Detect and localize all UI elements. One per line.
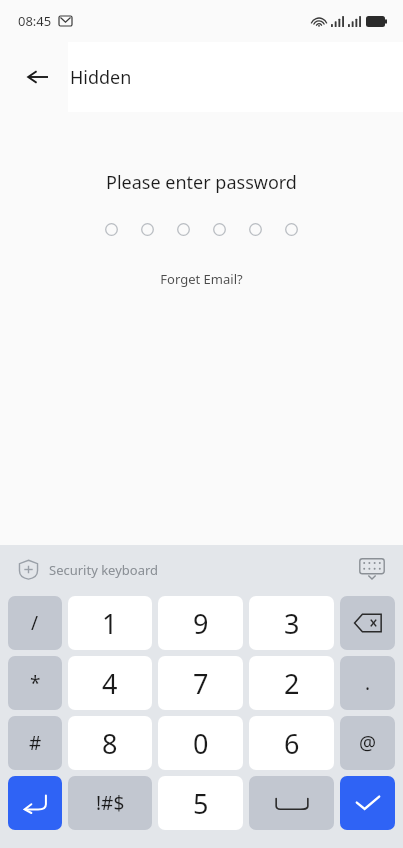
button[interactable]: @ bbox=[340, 716, 395, 770]
button[interactable]: Enter bbox=[8, 776, 62, 830]
button[interactable]: . bbox=[340, 656, 395, 710]
button[interactable]: 2 bbox=[249, 656, 334, 710]
staticText: Forget Email? bbox=[160, 270, 243, 288]
button[interactable]: 6 bbox=[249, 716, 334, 770]
button[interactable]: Hide keyboard bbox=[355, 552, 389, 586]
staticText: . bbox=[365, 670, 371, 696]
button[interactable]: 5 bbox=[158, 776, 243, 830]
staticText: / bbox=[31, 610, 39, 636]
staticText: 2 bbox=[284, 665, 300, 702]
button[interactable]: Backspace bbox=[340, 596, 395, 650]
button[interactable]: !#$ bbox=[68, 776, 152, 830]
button[interactable]: 9 bbox=[158, 596, 243, 650]
staticText: Hidden bbox=[70, 65, 132, 90]
staticText: @ bbox=[359, 730, 377, 756]
staticText: 08:45 bbox=[18, 12, 52, 30]
staticText: * bbox=[30, 670, 41, 696]
button[interactable]: Space bbox=[249, 776, 334, 830]
staticText: 0 bbox=[193, 725, 209, 762]
button[interactable]: 1 bbox=[68, 596, 152, 650]
staticText: 6 bbox=[284, 725, 300, 762]
button[interactable]: 0 bbox=[158, 716, 243, 770]
button[interactable]: Confirm bbox=[340, 776, 395, 830]
staticText: 5 bbox=[193, 785, 209, 822]
staticText: Please enter password bbox=[106, 170, 297, 195]
button[interactable]: 8 bbox=[68, 716, 152, 770]
staticText: 3 bbox=[284, 605, 300, 642]
button[interactable]: # bbox=[8, 716, 62, 770]
button[interactable]: / bbox=[8, 596, 62, 650]
button[interactable]: Forget Email? bbox=[150, 266, 253, 292]
button[interactable]: 3 bbox=[249, 596, 334, 650]
staticText: Security keyboard bbox=[49, 561, 159, 579]
staticText: 1 bbox=[102, 605, 118, 642]
button[interactable]: Back bbox=[18, 57, 58, 97]
staticText: 9 bbox=[193, 605, 209, 642]
staticText: # bbox=[29, 730, 42, 756]
staticText: !#$ bbox=[96, 790, 125, 816]
staticText: 8 bbox=[102, 725, 118, 762]
staticText: 7 bbox=[193, 665, 209, 702]
button[interactable]: 7 bbox=[158, 656, 243, 710]
button[interactable]: * bbox=[8, 656, 62, 710]
staticText: 4 bbox=[102, 665, 118, 702]
button[interactable]: 4 bbox=[68, 656, 152, 710]
